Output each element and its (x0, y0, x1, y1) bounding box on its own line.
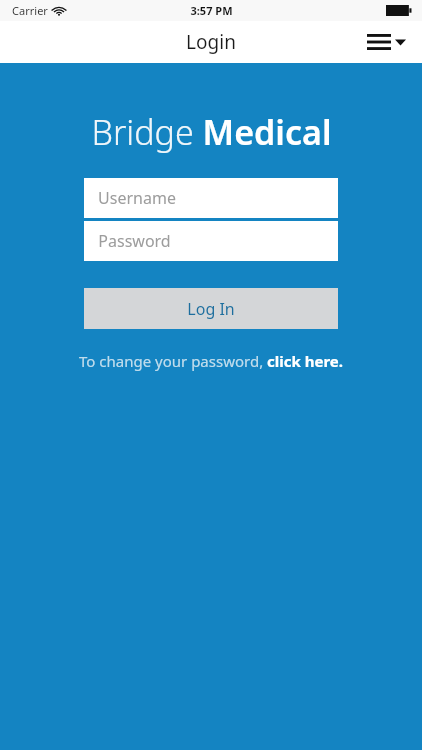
button[interactable]: Username (84, 178, 338, 218)
staticText: Username (98, 187, 176, 209)
staticText: Login (186, 29, 236, 55)
button[interactable]: Log In (84, 288, 338, 329)
staticText: Log In (187, 298, 235, 320)
staticText: Bridge Medical (91, 109, 332, 155)
staticText: 3:57 PM (190, 3, 233, 18)
button[interactable]: To change your password, click here. (71, 349, 351, 373)
staticText: Carrier (12, 3, 48, 18)
button[interactable]: Menu (361, 28, 412, 56)
button[interactable]: Password (84, 221, 338, 261)
staticText: Password (98, 230, 171, 252)
staticText: To change your password, click here. (79, 351, 343, 371)
